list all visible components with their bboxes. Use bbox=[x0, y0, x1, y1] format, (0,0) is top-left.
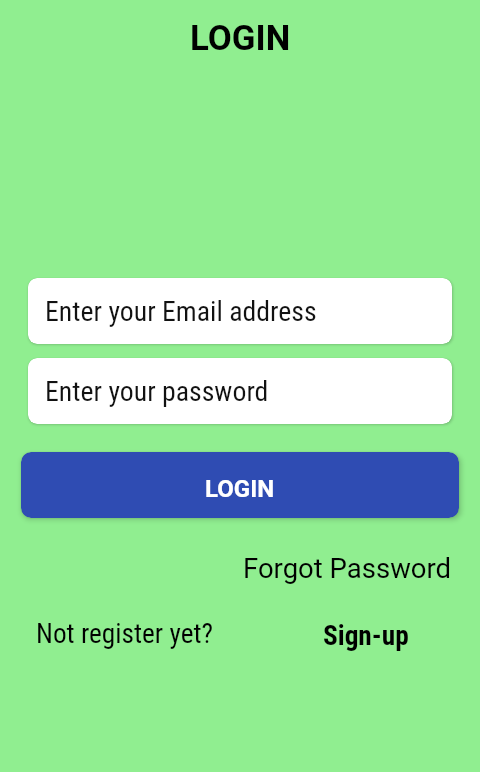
staticText: Enter your Email address bbox=[45, 295, 317, 328]
staticText: LOGIN bbox=[205, 475, 275, 503]
staticText: Enter your password bbox=[45, 375, 269, 408]
button[interactable]: Enter your password bbox=[28, 358, 452, 424]
button[interactable]: LOGIN bbox=[21, 452, 459, 518]
staticText: Not register yet? bbox=[36, 618, 214, 650]
button[interactable]: Sign-up bbox=[323, 620, 409, 652]
button[interactable]: Forgot Password bbox=[243, 552, 452, 584]
button[interactable]: Enter your Email address bbox=[28, 278, 452, 344]
staticText: LOGIN bbox=[190, 18, 291, 59]
